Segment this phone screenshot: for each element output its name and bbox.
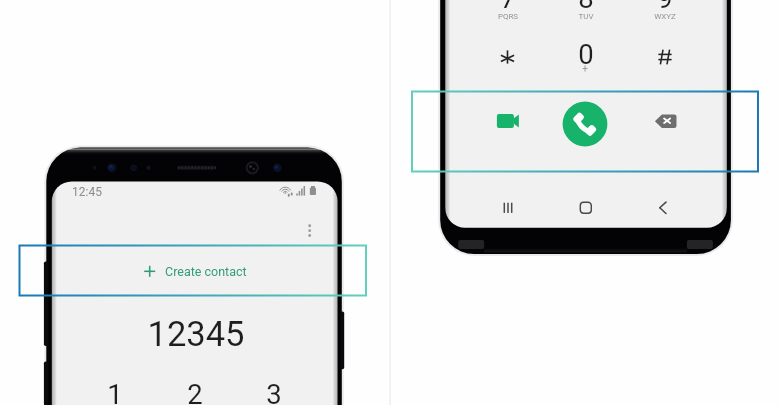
button[interactable]: Call: [558, 102, 603, 147]
staticText: WXYZ: [640, 12, 690, 24]
staticText: 7: [488, 0, 528, 22]
button[interactable]: Video call: [483, 106, 519, 142]
staticText: TUV: [561, 12, 611, 24]
button[interactable]: Back: [649, 194, 677, 222]
button[interactable]: Home: [572, 194, 600, 222]
button[interactable]: Backspace: [642, 106, 678, 142]
staticText: Create contact: [165, 264, 247, 279]
staticText: 1: [95, 378, 135, 405]
staticText: 12:45: [72, 185, 102, 199]
button[interactable]: Recents: [494, 194, 522, 222]
staticText: 9: [645, 0, 685, 22]
button[interactable]: [52, 253, 338, 290]
staticText: 3: [254, 378, 294, 405]
staticText: +: [570, 63, 600, 78]
staticText: 0: [566, 38, 606, 78]
staticText: PQRS: [483, 12, 533, 24]
staticText: 8: [566, 0, 606, 22]
staticText: 12345: [126, 314, 266, 364]
staticText: 2: [175, 378, 215, 405]
